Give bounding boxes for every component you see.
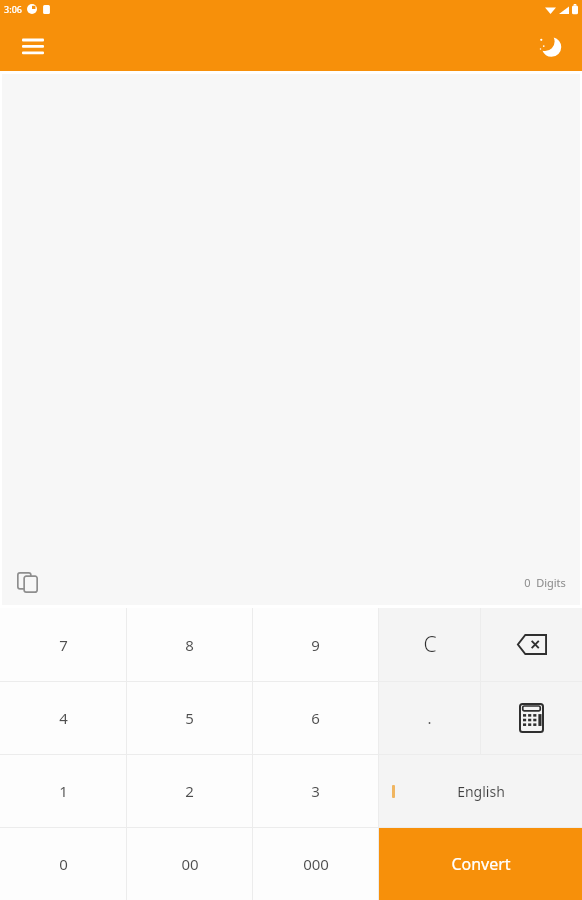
- button[interactable]: 6: [253, 682, 378, 754]
- staticText: 5: [185, 708, 194, 728]
- button[interactable]: Copy: [8, 563, 46, 601]
- staticText: 1: [59, 781, 68, 801]
- button[interactable]: 0: [0, 828, 126, 900]
- button[interactable]: Calculator: [481, 682, 582, 754]
- staticText: 7: [59, 635, 68, 655]
- staticText: English: [457, 782, 505, 801]
- staticText: 000: [303, 854, 329, 874]
- staticText: 3: [311, 781, 320, 801]
- button[interactable]: 4: [0, 682, 126, 754]
- staticText: 3:06: [4, 3, 22, 15]
- staticText: Convert: [451, 853, 511, 875]
- button[interactable]: Menu: [10, 22, 56, 68]
- staticText: 8: [185, 635, 194, 655]
- button[interactable]: 9: [253, 608, 378, 681]
- staticText: .: [427, 708, 432, 728]
- button[interactable]: 1: [0, 755, 126, 827]
- button[interactable]: 00: [127, 828, 252, 900]
- staticText: 2: [185, 781, 194, 801]
- button[interactable]: 5: [127, 682, 252, 754]
- staticText: C: [423, 630, 437, 659]
- button[interactable]: Night mode: [526, 22, 572, 68]
- button[interactable]: C: [379, 608, 480, 681]
- staticText: 00: [181, 854, 199, 874]
- staticText: 6: [311, 708, 320, 728]
- button[interactable]: 000: [253, 828, 378, 900]
- staticText: 4: [59, 708, 68, 728]
- button[interactable]: 2: [127, 755, 252, 827]
- button[interactable]: Convert: [379, 828, 582, 900]
- button[interactable]: English: [379, 755, 582, 827]
- staticText: 9: [311, 635, 320, 655]
- staticText: 0 Digits: [524, 575, 566, 590]
- button[interactable]: 7: [0, 608, 126, 681]
- button[interactable]: 8: [127, 608, 252, 681]
- button[interactable]: Backspace: [481, 608, 582, 681]
- button[interactable]: 3: [253, 755, 378, 827]
- staticText: 0: [59, 854, 68, 874]
